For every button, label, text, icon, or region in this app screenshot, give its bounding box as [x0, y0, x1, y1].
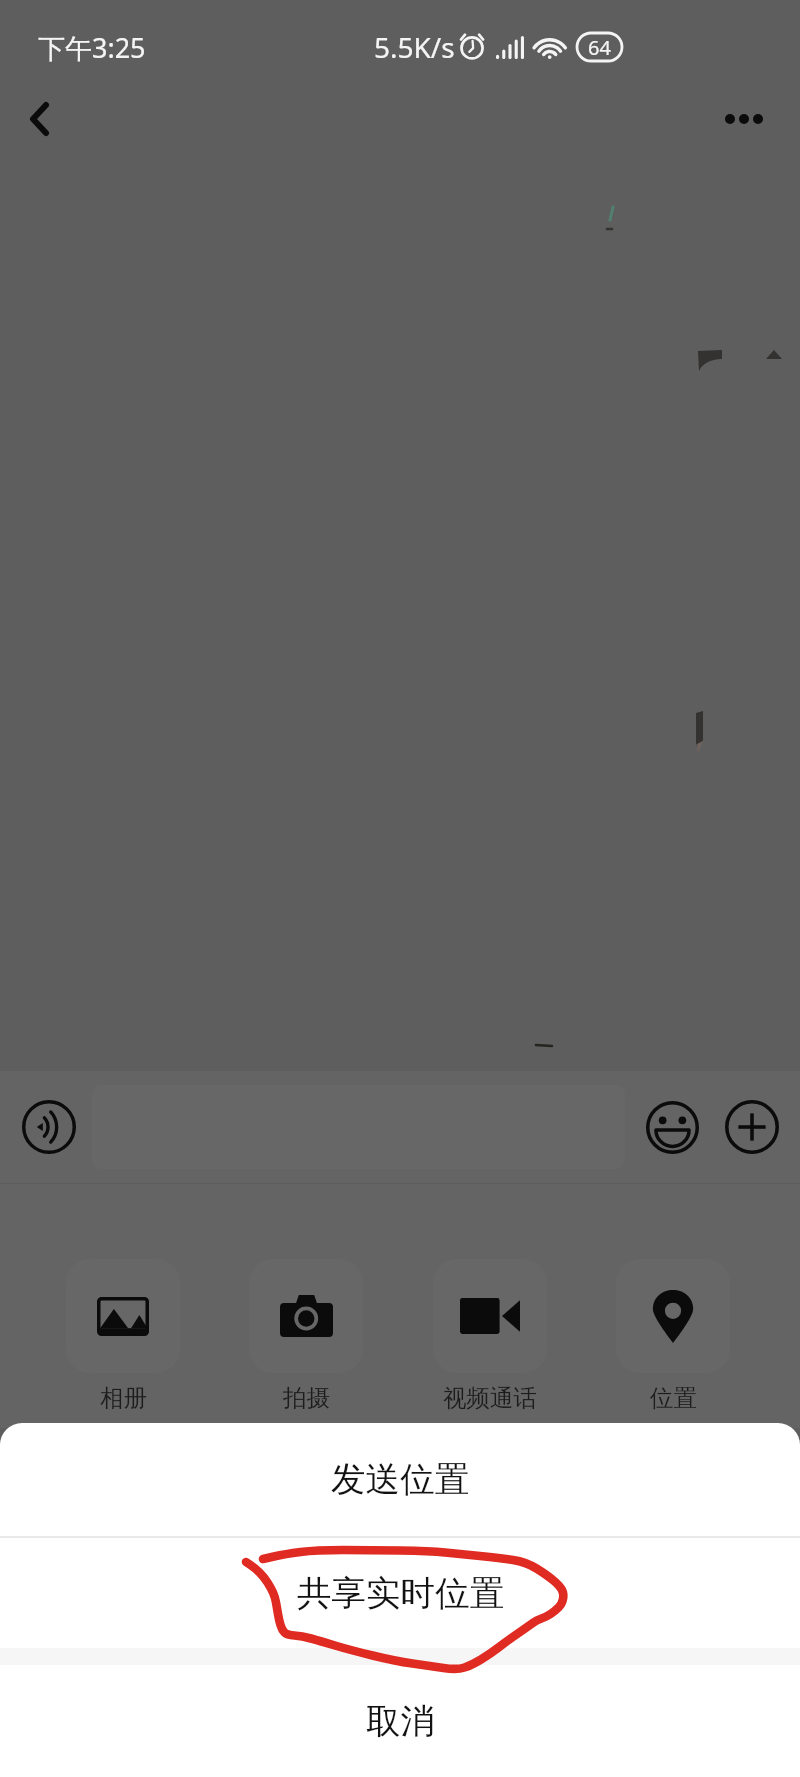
staticText: 位置 [650, 1383, 697, 1413]
button[interactable]: 相册 [43, 1259, 203, 1413]
button[interactable]: More [716, 1091, 788, 1163]
button[interactable]: Back [4, 84, 74, 154]
staticText: 拍摄 [283, 1383, 330, 1413]
staticText: 相册 [100, 1383, 147, 1413]
button[interactable]: 视频通话 [410, 1259, 570, 1413]
staticText: 64 [588, 34, 611, 61]
button[interactable]: 发送位置 [0, 1423, 800, 1536]
button[interactable]: More options [704, 84, 784, 154]
button[interactable]: 共享实时位置 [0, 1538, 800, 1648]
staticText: 取消 [366, 1700, 435, 1743]
staticText: 发送位置 [331, 1458, 469, 1501]
button[interactable]: Emoji [636, 1091, 708, 1163]
button[interactable]: 拍摄 [226, 1259, 386, 1413]
staticText: 视频通话 [443, 1383, 537, 1413]
button[interactable]: 位置 [593, 1259, 753, 1413]
staticText: 下午3:25 [38, 29, 146, 66]
staticText: 共享实时位置 [297, 1572, 504, 1615]
staticText: 5.5K/s [374, 28, 455, 66]
button[interactable]: 取消 [0, 1665, 800, 1777]
button[interactable]: Voice input [7, 1085, 91, 1169]
